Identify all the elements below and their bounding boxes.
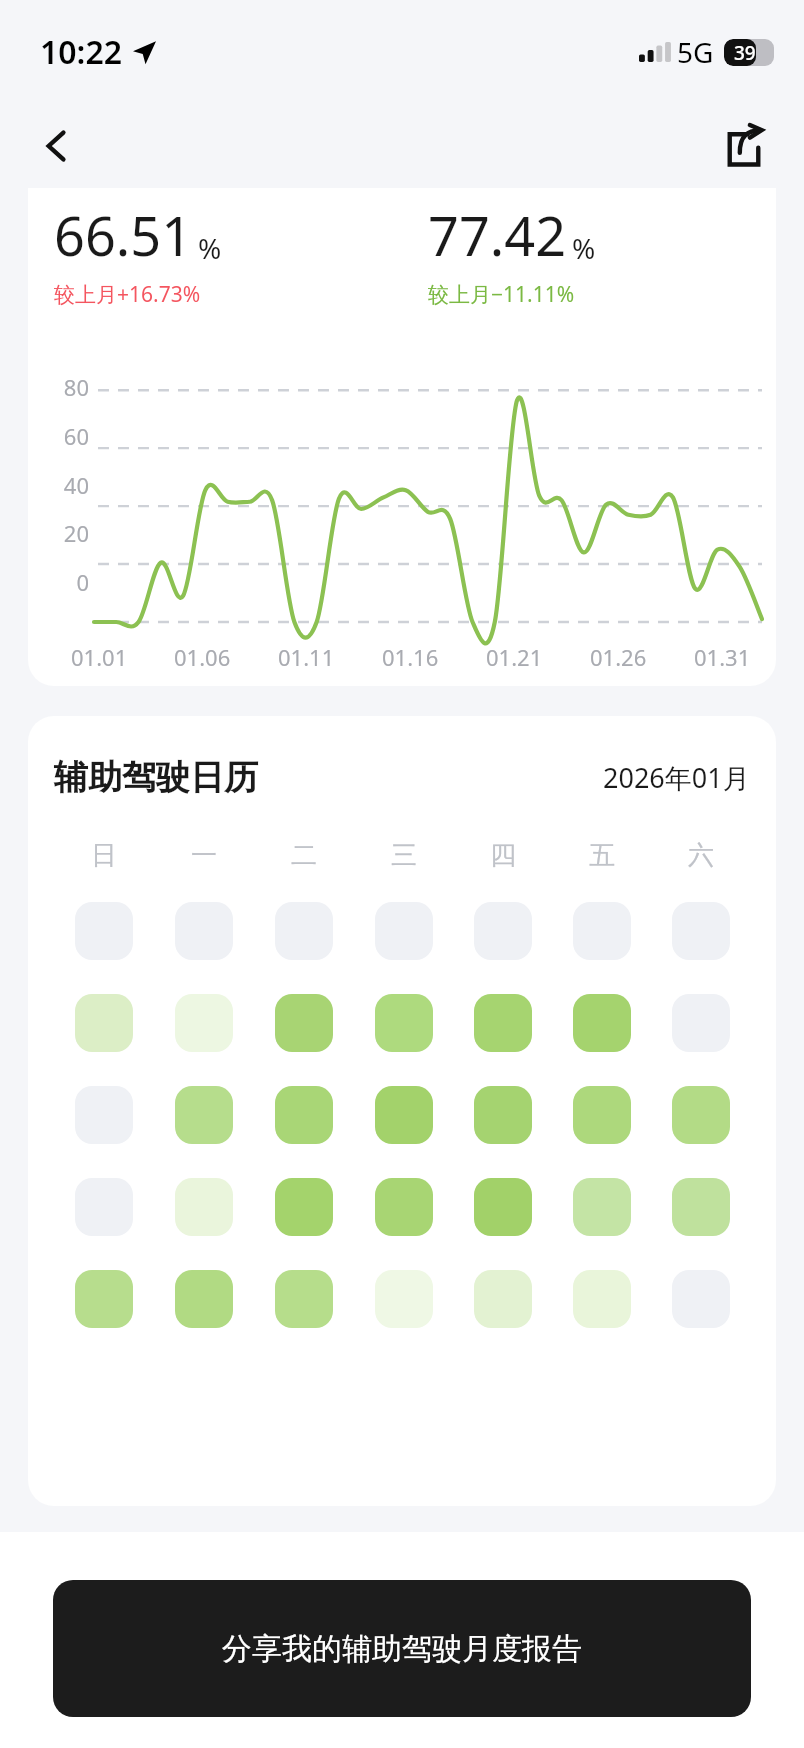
button[interactable] [75, 902, 133, 960]
button[interactable] [573, 994, 631, 1052]
staticText: 66.51 [54, 198, 193, 272]
button[interactable] [573, 1270, 631, 1328]
button[interactable] [573, 902, 631, 960]
staticText: 2026年01月 [603, 759, 750, 796]
button[interactable] [573, 1178, 631, 1236]
button[interactable] [672, 902, 730, 960]
staticText: 5G [677, 33, 714, 71]
staticText: 分享我的辅助驾驶月度报告 [222, 1630, 582, 1668]
staticText: 01.01 [71, 642, 128, 672]
button[interactable] [175, 1270, 233, 1328]
button[interactable] [375, 902, 433, 960]
button[interactable] [175, 994, 233, 1052]
button[interactable] [175, 1086, 233, 1144]
staticText: 日 [91, 839, 117, 872]
button[interactable] [375, 1086, 433, 1144]
staticText: 0 [28, 567, 89, 597]
button[interactable]: Back [28, 117, 86, 175]
button[interactable] [672, 994, 730, 1052]
button[interactable] [474, 1086, 532, 1144]
button[interactable] [474, 1178, 532, 1236]
staticText: 五 [589, 839, 615, 872]
button[interactable] [672, 1086, 730, 1144]
button[interactable] [175, 1178, 233, 1236]
button[interactable] [672, 1178, 730, 1236]
staticText: 01.26 [590, 642, 647, 672]
staticText: 01.06 [174, 642, 231, 672]
button[interactable] [474, 902, 532, 960]
staticText: 六 [688, 839, 714, 872]
button[interactable]: 分享我的辅助驾驶月度报告 [53, 1580, 751, 1717]
button[interactable] [75, 1270, 133, 1328]
button[interactable] [573, 1086, 631, 1144]
staticText: 01.16 [382, 642, 439, 672]
staticText: 一 [191, 839, 217, 872]
staticText: 01.11 [278, 642, 335, 672]
button[interactable] [375, 994, 433, 1052]
button[interactable] [375, 1178, 433, 1236]
button[interactable] [275, 1086, 333, 1144]
staticText: 20 [28, 518, 89, 548]
staticText: 辅助驾驶日历 [54, 756, 258, 799]
button[interactable]: Share [712, 114, 776, 178]
staticText: 二 [291, 839, 317, 872]
staticText: % [572, 229, 596, 267]
button[interactable] [75, 1086, 133, 1144]
staticText: % [198, 229, 222, 267]
button[interactable] [474, 1270, 532, 1328]
button[interactable] [672, 1270, 730, 1328]
button[interactable] [275, 994, 333, 1052]
button[interactable] [275, 1270, 333, 1328]
staticText: 01.31 [694, 642, 751, 672]
staticText: 60 [28, 421, 89, 451]
button[interactable] [275, 902, 333, 960]
staticText: 三 [391, 839, 417, 872]
staticText: 01.21 [486, 642, 543, 672]
button[interactable] [75, 1178, 133, 1236]
button[interactable] [474, 994, 532, 1052]
button[interactable]: 2026年01月 [603, 759, 750, 796]
button[interactable] [75, 994, 133, 1052]
staticText: 较上月+16.73% [54, 280, 201, 309]
button[interactable] [175, 902, 233, 960]
staticText: 80 [28, 372, 89, 402]
staticText: 四 [490, 839, 516, 872]
staticText: 10:22 [40, 30, 123, 74]
staticText: 39 [734, 40, 756, 66]
staticText: 较上月−11.11% [428, 280, 575, 309]
staticText: 77.42 [428, 198, 567, 272]
staticText: 40 [28, 470, 89, 500]
button[interactable] [275, 1178, 333, 1236]
button[interactable] [375, 1270, 433, 1328]
